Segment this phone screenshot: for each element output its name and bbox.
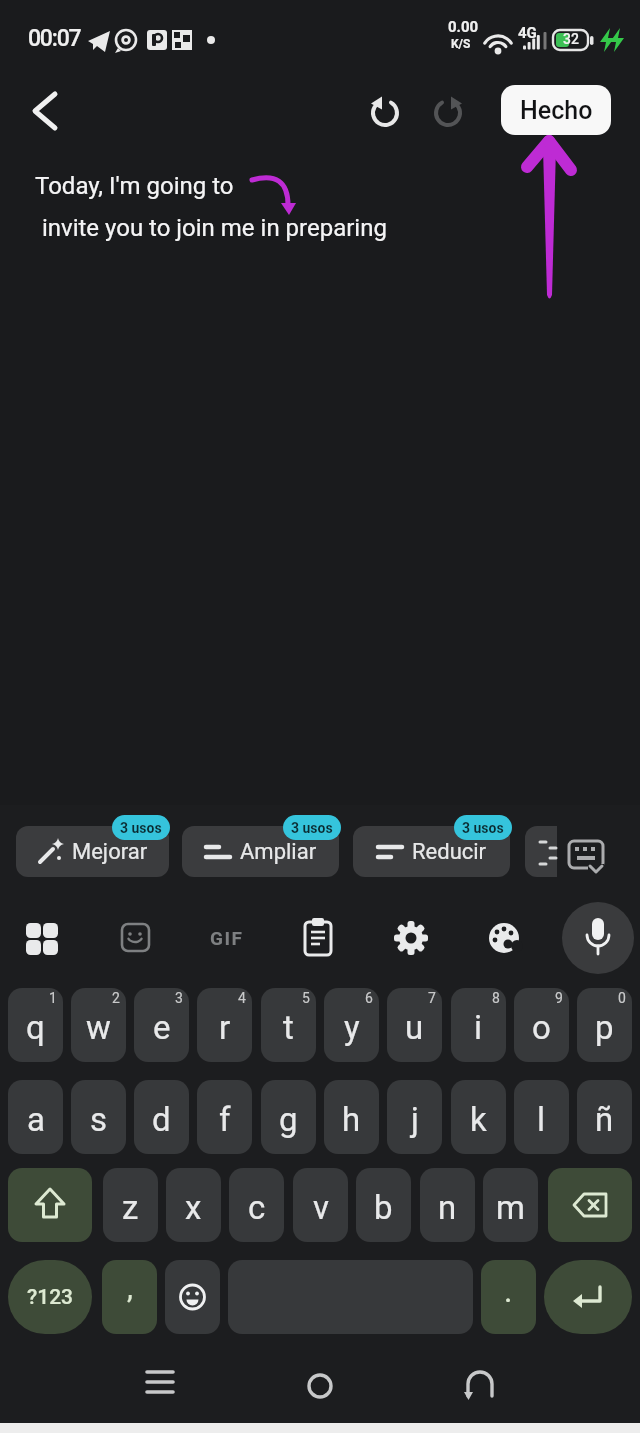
button[interactable]: t [261, 988, 316, 1062]
button[interactable] [562, 902, 634, 974]
button[interactable] [440, 1358, 520, 1418]
staticText: 1 [49, 990, 57, 1006]
staticText: 3 usos [291, 820, 333, 836]
button[interactable]: ñ [577, 1080, 632, 1154]
button[interactable]: h [324, 1080, 379, 1154]
button[interactable] [107, 910, 163, 966]
button[interactable]: v [293, 1168, 348, 1242]
staticText: 3 usos [120, 820, 162, 836]
button[interactable] [280, 1358, 360, 1418]
button[interactable] [290, 910, 346, 966]
staticText: n [438, 1188, 457, 1227]
staticText: 3 usos [462, 820, 504, 836]
staticText: f [219, 1100, 231, 1139]
staticText: a [27, 1100, 45, 1139]
button[interactable]: u [387, 988, 442, 1062]
staticText: 0.00 [448, 18, 479, 36]
button[interactable]: r [197, 988, 252, 1062]
button[interactable] [548, 1168, 632, 1242]
staticText: s [90, 1100, 108, 1139]
button[interactable] [8, 1168, 92, 1242]
button[interactable]: l [514, 1080, 569, 1154]
staticText: Reducir [412, 839, 487, 865]
button[interactable] [383, 910, 439, 966]
button[interactable] [363, 89, 407, 133]
staticText: Hecho [520, 96, 593, 125]
staticText: h [342, 1100, 361, 1139]
button[interactable]: y [324, 988, 379, 1062]
staticText: w [86, 1008, 111, 1047]
button[interactable]: o [514, 988, 569, 1062]
staticText: k [470, 1100, 487, 1139]
button[interactable] [102, 1260, 157, 1334]
staticText: o [532, 1008, 551, 1047]
staticText: 3 [175, 990, 183, 1006]
button[interactable]: Ampliar [182, 826, 339, 877]
button[interactable]: f [197, 1080, 252, 1154]
button[interactable] [476, 910, 532, 966]
button[interactable]: d [134, 1080, 189, 1154]
staticText: 0 [618, 990, 626, 1006]
staticText: 00:07 [28, 25, 81, 52]
button[interactable]: i [451, 988, 506, 1062]
button[interactable] [165, 1260, 220, 1334]
staticText: 8 [492, 990, 500, 1006]
button[interactable]: q [8, 988, 63, 1062]
button[interactable]: n [420, 1168, 475, 1242]
staticText: g [279, 1100, 298, 1139]
button[interactable] [8, 1260, 92, 1334]
button[interactable] [481, 1260, 536, 1334]
staticText: l [537, 1100, 546, 1139]
staticText: 4 [238, 990, 246, 1006]
button[interactable]: a [8, 1080, 63, 1154]
staticText: 4G [518, 24, 537, 42]
staticText: . [504, 1272, 513, 1310]
staticText: 6 [365, 990, 373, 1006]
button[interactable] [426, 89, 470, 133]
staticText: e [153, 1008, 171, 1047]
staticText: r [219, 1008, 231, 1047]
button[interactable]: c [229, 1168, 284, 1242]
button[interactable]: k [451, 1080, 506, 1154]
button[interactable]: p [577, 988, 632, 1062]
staticText: ñ [595, 1100, 614, 1139]
button[interactable]: s [71, 1080, 126, 1154]
staticText: v [313, 1188, 329, 1227]
button[interactable]: Hecho [501, 85, 611, 135]
button[interactable] [544, 1260, 632, 1334]
staticText: p [595, 1008, 614, 1047]
staticText: x [185, 1188, 202, 1227]
button[interactable] [525, 826, 557, 877]
staticText: ?123 [27, 1285, 74, 1310]
button[interactable]: m [483, 1168, 538, 1242]
staticText: Today, I'm going to [35, 172, 234, 200]
staticText: d [152, 1100, 171, 1139]
button[interactable] [14, 910, 70, 966]
staticText: y [344, 1008, 360, 1047]
staticText: GIF [210, 927, 244, 949]
button[interactable]: Reducir [353, 826, 510, 877]
button[interactable]: b [356, 1168, 411, 1242]
button[interactable]: Mejorar [16, 826, 169, 877]
button[interactable]: e [134, 988, 189, 1062]
button[interactable]: j [387, 1080, 442, 1154]
staticText: q [26, 1008, 45, 1047]
staticText: z [122, 1188, 139, 1227]
staticText: j [411, 1100, 419, 1139]
staticText: m [496, 1188, 525, 1227]
button[interactable] [16, 85, 72, 137]
staticText: 9 [555, 990, 563, 1006]
button[interactable] [120, 1358, 200, 1418]
staticText: b [374, 1188, 393, 1227]
staticText: K/S [451, 37, 471, 51]
button[interactable]: g [261, 1080, 316, 1154]
staticText: Mejorar [72, 839, 148, 865]
button[interactable]: z [103, 1168, 158, 1242]
staticText: invite you to join me in preparing [36, 214, 387, 242]
button[interactable]: w [71, 988, 126, 1062]
button[interactable]: GIF [199, 910, 255, 966]
button[interactable] [561, 833, 611, 877]
button[interactable]: x [166, 1168, 221, 1242]
staticText: 32 [563, 31, 579, 47]
